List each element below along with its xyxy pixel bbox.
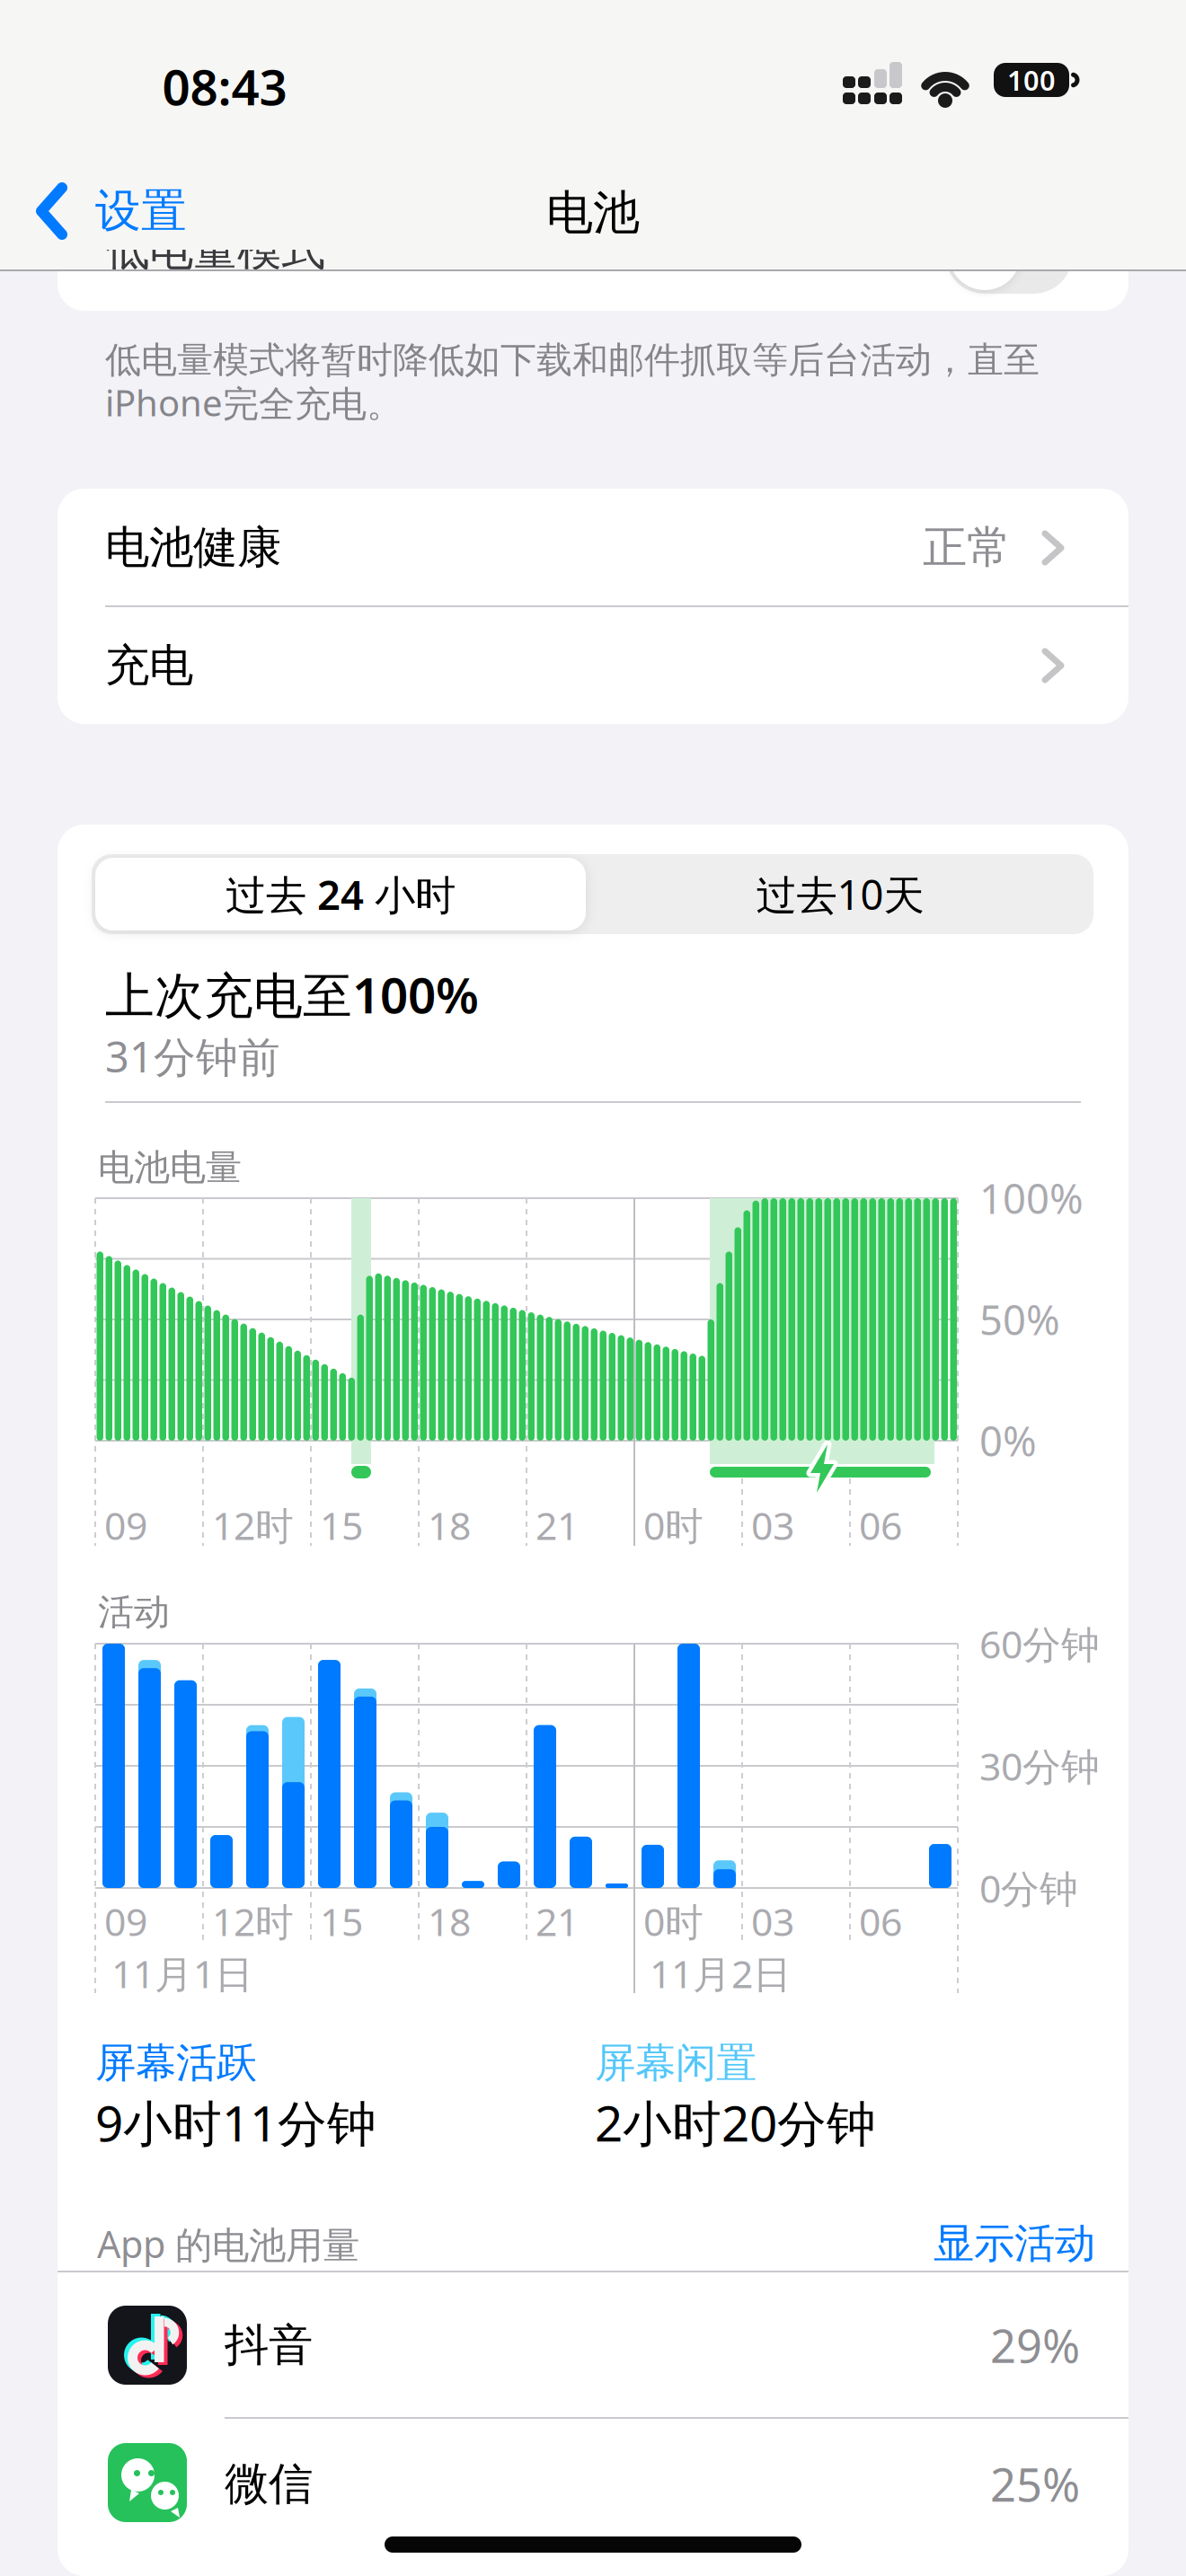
staticText: 100% <box>979 1171 1084 1225</box>
staticText: 15 <box>320 1896 363 1947</box>
button[interactable]: 微信 <box>58 2419 1128 2576</box>
staticText: 过去 24 小时 <box>226 867 456 921</box>
button[interactable]: 过去10天 <box>589 856 1092 932</box>
staticText: 03 <box>751 1896 794 1947</box>
staticText: 充电 <box>105 638 193 693</box>
staticText: 21 <box>535 1500 579 1551</box>
staticText: App 的电池用量 <box>97 2219 359 2268</box>
button[interactable]: 设置 <box>38 171 271 251</box>
staticText: 屏幕活跃 <box>95 2038 257 2088</box>
staticText: 21 <box>535 1896 579 1947</box>
staticText: 抖音 <box>225 2318 313 2372</box>
staticText: 0时 <box>643 1896 704 1947</box>
staticText: 低电量模式将暂时降低如下载和邮件抓取等后台活动，直至 <box>105 338 1040 382</box>
staticText: 显示活动 <box>934 2219 1095 2269</box>
staticText: 09 <box>104 1896 147 1947</box>
staticText: 09 <box>104 1500 147 1551</box>
staticText: 屏幕闲置 <box>595 2038 757 2088</box>
staticText: 0时 <box>643 1500 704 1551</box>
staticText: 12时 <box>212 1896 294 1947</box>
staticText: 2小时20分钟 <box>595 2090 876 2155</box>
staticText: 9小时11分钟 <box>95 2090 376 2155</box>
staticText: 电池电量 <box>98 1146 242 1190</box>
staticText: 25% <box>990 2454 1080 2514</box>
staticText: 上次充电至100% <box>105 962 479 1027</box>
staticText: 12时 <box>212 1500 294 1551</box>
staticText: 0分钟 <box>979 1863 1078 1913</box>
staticText: 电池健康 <box>105 520 281 575</box>
staticText: 29% <box>990 2315 1080 2375</box>
button[interactable]: 充电 <box>58 607 1128 724</box>
staticText: 18 <box>428 1500 471 1551</box>
staticText: 30分钟 <box>979 1740 1100 1791</box>
staticText: 电池 <box>546 184 640 242</box>
staticText: 100 <box>1007 62 1056 98</box>
staticText: 0% <box>979 1414 1037 1468</box>
staticText: 15 <box>320 1500 363 1551</box>
staticText: 18 <box>428 1896 471 1947</box>
staticText: 08:43 <box>162 54 287 119</box>
staticText: 正常 <box>923 520 1011 575</box>
staticText: iPhone完全充电。 <box>105 378 403 426</box>
staticText: 微信 <box>225 2457 313 2511</box>
staticText: 03 <box>751 1500 794 1551</box>
staticText: 06 <box>859 1500 902 1551</box>
staticText: 活动 <box>98 1590 170 1634</box>
staticText: 31分钟前 <box>105 1028 280 1084</box>
staticText: 过去10天 <box>756 867 924 921</box>
staticText: 设置 <box>95 183 187 239</box>
button[interactable]: 电池健康 <box>58 489 1128 606</box>
button[interactable]: 显示活动 <box>826 2217 1095 2271</box>
button[interactable]: 抖音 <box>58 2272 1128 2418</box>
staticText: 50% <box>979 1292 1060 1346</box>
staticText: 60分钟 <box>979 1618 1100 1669</box>
button[interactable]: 过去 24 小时 <box>95 858 586 931</box>
staticText: 11月1日 <box>111 1948 253 1999</box>
staticText: 06 <box>859 1896 902 1947</box>
staticText: 11月2日 <box>650 1948 792 1999</box>
staticText: 低电量模式 <box>105 222 325 277</box>
button[interactable]: 低电量模式 <box>945 215 1073 294</box>
